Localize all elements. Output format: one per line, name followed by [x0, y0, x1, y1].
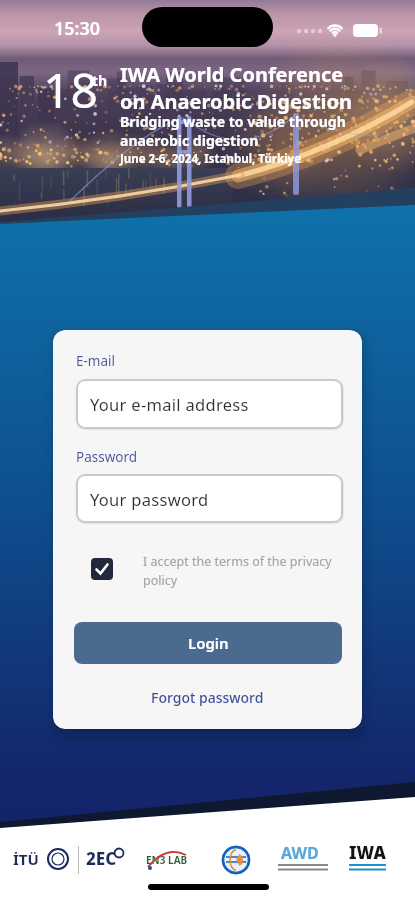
staticText: Bridging waste to value through [120, 112, 346, 131]
staticText: anaerobic digestion [120, 131, 259, 150]
staticText: AWD [281, 842, 319, 864]
staticText: EN3 LAB [146, 853, 188, 867]
staticText: Your password [90, 488, 209, 510]
staticText: IWA [349, 841, 386, 864]
button[interactable] [91, 558, 113, 580]
staticText: June 2-6, 2024, Istanbul, Türkiye [120, 151, 302, 167]
staticText: Password [76, 448, 138, 466]
staticText: IWA World Conference [120, 61, 344, 88]
staticText: İTÜ [13, 849, 39, 869]
staticText: Forgot password [151, 688, 264, 707]
staticText: E-mail [76, 352, 116, 370]
staticText: Your e-mail address [90, 393, 249, 415]
staticText: I accept the terms of the privacy policy [143, 553, 332, 589]
button[interactable]: Login [74, 622, 342, 664]
staticText: 15:30 [54, 16, 101, 41]
staticText: on Anaerobic Digestion [120, 88, 353, 115]
staticText: 18 [43, 57, 98, 122]
staticText: th [92, 71, 108, 90]
button[interactable]: Forgot password [53, 688, 362, 707]
button[interactable]: Your password [76, 474, 343, 523]
button[interactable]: Your e-mail address [76, 379, 343, 429]
staticText: Login [188, 633, 229, 653]
staticText: 2EC [86, 847, 117, 870]
